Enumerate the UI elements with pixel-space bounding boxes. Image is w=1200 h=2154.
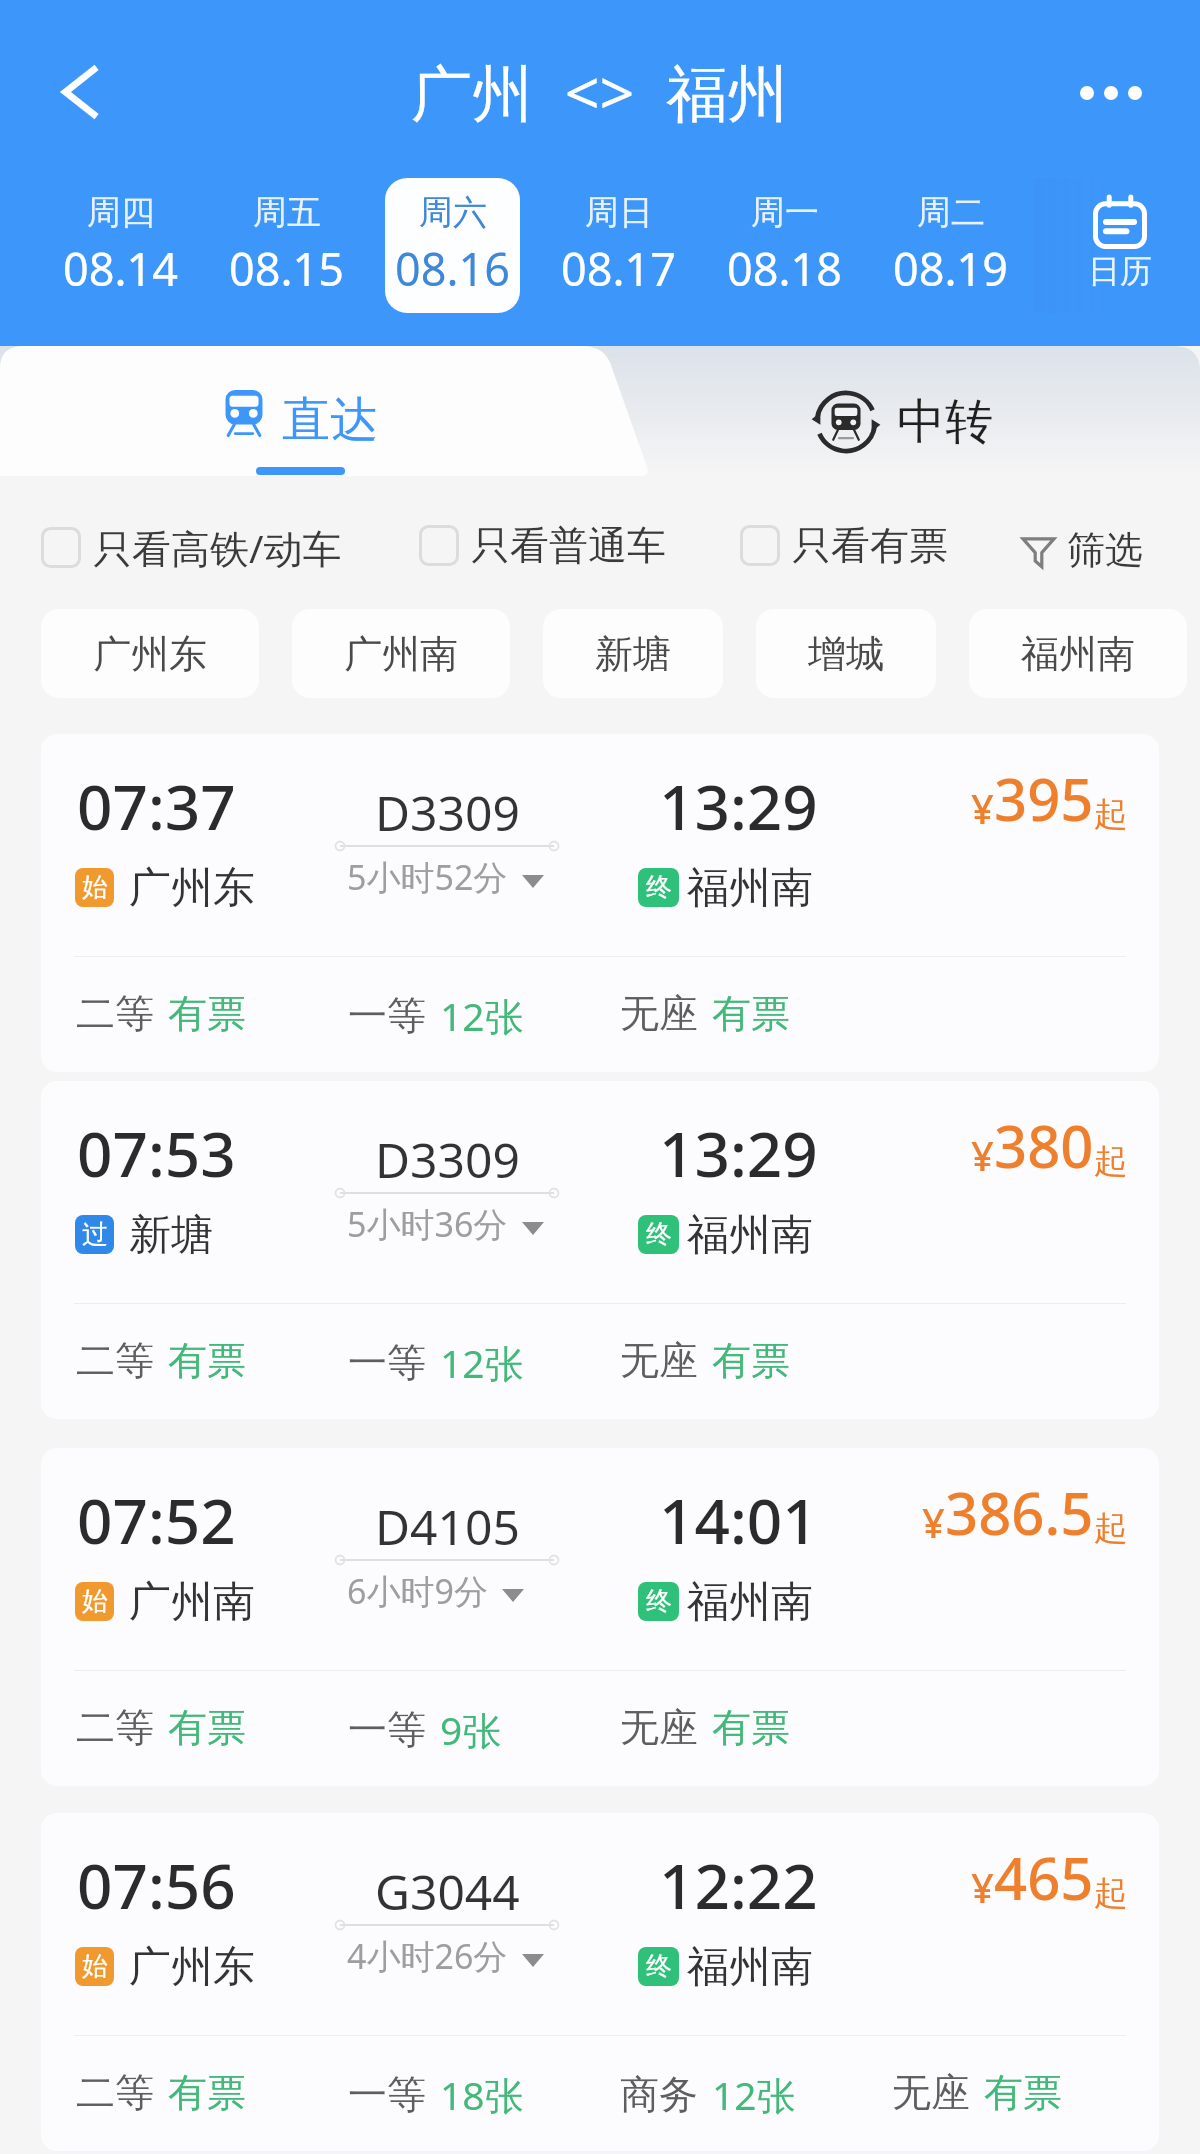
staticText: 二等: [76, 989, 154, 1038]
staticText: 日历: [1088, 251, 1152, 291]
staticText: 一等: [348, 2070, 426, 2119]
staticText: 无座: [620, 1336, 698, 1385]
staticText: 有票: [712, 989, 790, 1038]
staticText: 周二: [917, 191, 985, 234]
staticText: 有票: [168, 2068, 246, 2117]
staticText: D3309: [375, 1127, 520, 1192]
staticText: 08.19: [893, 238, 1009, 299]
staticText: 5小时36分: [347, 1201, 508, 1247]
staticText: 起: [1094, 1507, 1128, 1550]
staticText: 9张: [440, 1703, 502, 1756]
staticText: 08.18: [727, 238, 843, 299]
staticText: 增城: [808, 630, 884, 678]
staticText: 广州东: [93, 630, 207, 678]
staticText: 13:29: [659, 1111, 818, 1195]
button[interactable]: Back: [37, 48, 125, 136]
staticText: 465: [994, 1838, 1094, 1917]
staticText: ¥: [971, 1860, 994, 1914]
staticText: 二等: [76, 2068, 154, 2117]
staticText: 4小时26分: [347, 1933, 508, 1979]
staticText: 6小时9分: [347, 1568, 488, 1614]
button[interactable]: 周一: [717, 178, 852, 313]
staticText: 二等: [76, 1336, 154, 1385]
staticText: 广州南: [129, 1576, 255, 1629]
button[interactable]: 周日: [551, 178, 686, 313]
button[interactable]: 增城: [756, 609, 936, 698]
staticText: 福州南: [687, 1576, 813, 1629]
staticText: 新塘: [595, 630, 671, 678]
staticText: 周四: [87, 191, 155, 234]
staticText: 广州东: [129, 1941, 255, 1994]
staticText: 起: [1094, 793, 1128, 836]
staticText: 395: [994, 759, 1094, 838]
staticText: 终: [646, 871, 672, 904]
staticText: D3309: [375, 780, 520, 845]
button[interactable]: 中转: [600, 346, 1200, 476]
staticText: 直达: [282, 390, 378, 450]
staticText: 无座: [620, 989, 698, 1038]
staticText: 有票: [168, 989, 246, 1038]
button[interactable]: 只看普通车: [419, 521, 666, 570]
staticText: 终: [646, 1218, 672, 1251]
staticText: 只看有票: [792, 521, 948, 570]
staticText: 07:52: [77, 1478, 236, 1562]
button[interactable]: 07:56: [41, 1813, 1159, 2151]
button[interactable]: 周四: [53, 178, 188, 313]
staticText: 07:56: [77, 1843, 236, 1927]
button[interactable]: More options: [1067, 49, 1155, 137]
button[interactable]: 新塘: [543, 609, 723, 698]
staticText: 07:37: [77, 764, 236, 848]
staticText: 有票: [168, 1703, 246, 1752]
staticText: 只看高铁/动车: [93, 521, 342, 574]
staticText: 12张: [440, 989, 524, 1042]
staticText: 广州南: [344, 630, 458, 678]
staticText: 周六: [419, 191, 487, 234]
staticText: 二等: [76, 1703, 154, 1752]
staticText: 14:01: [659, 1478, 818, 1562]
staticText: G3044: [375, 1859, 520, 1924]
staticText: 12:22: [659, 1843, 818, 1927]
button[interactable]: 筛选: [1022, 526, 1143, 574]
staticText: 有票: [984, 2068, 1062, 2117]
staticText: 有票: [712, 1336, 790, 1385]
staticText: 广州 <> 福州: [411, 50, 789, 133]
staticText: 新塘: [129, 1209, 213, 1262]
button[interactable]: 直达: [0, 346, 600, 476]
staticText: 12张: [440, 1336, 524, 1389]
staticText: 一等: [348, 991, 426, 1040]
button[interactable]: 广州东: [41, 609, 259, 698]
staticText: 18张: [440, 2068, 524, 2121]
staticText: 08.17: [561, 238, 677, 299]
staticText: 福州南: [687, 1209, 813, 1262]
staticText: 终: [646, 1585, 672, 1618]
button[interactable]: Calendar: [1033, 178, 1200, 313]
button[interactable]: 只看有票: [740, 521, 948, 570]
button[interactable]: 07:37: [41, 734, 1159, 1072]
button[interactable]: 07:53: [41, 1081, 1159, 1419]
staticText: 08.14: [63, 238, 179, 299]
button[interactable]: 福州南: [969, 609, 1187, 698]
staticText: 始: [82, 1585, 108, 1618]
button[interactable]: 周五: [219, 178, 354, 313]
staticText: 只看普通车: [471, 521, 666, 570]
staticText: 有票: [712, 1703, 790, 1752]
staticText: ¥: [971, 781, 994, 835]
staticText: 始: [82, 871, 108, 904]
staticText: 386.5: [945, 1473, 1094, 1552]
button[interactable]: 周二: [883, 178, 1018, 313]
button[interactable]: 周六: [385, 178, 520, 313]
staticText: 始: [82, 1950, 108, 1983]
button[interactable]: 只看高铁/动车: [41, 521, 342, 574]
staticText: 中转: [897, 392, 993, 452]
staticText: 起: [1094, 1140, 1128, 1183]
staticText: 08.15: [229, 238, 345, 299]
button[interactable]: 07:52: [41, 1448, 1159, 1786]
staticText: 商务: [620, 2070, 698, 2119]
staticText: D4105: [375, 1494, 520, 1559]
staticText: 终: [646, 1950, 672, 1983]
staticText: 筛选: [1067, 526, 1143, 574]
staticText: 一等: [348, 1705, 426, 1754]
staticText: 08.16: [395, 238, 511, 299]
staticText: ¥: [922, 1495, 945, 1549]
button[interactable]: 广州南: [292, 609, 510, 698]
